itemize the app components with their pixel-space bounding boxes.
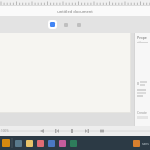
staticText: untitled document: [57, 9, 93, 14]
button[interactable]: Terminal: [70, 140, 77, 147]
button[interactable]: Select tool: [48, 20, 57, 29]
button[interactable]: Step back: [54, 128, 60, 134]
other: Select tool: [50, 22, 55, 27]
button[interactable]: Play: [84, 128, 90, 134]
other: Text tool: [64, 23, 68, 27]
staticText: Properties: [137, 35, 148, 42]
button[interactable]: Browser: [37, 140, 44, 147]
staticText: Create: [137, 111, 147, 115]
button[interactable]: Running app: [133, 140, 140, 147]
button[interactable]: Shape tool: [74, 20, 83, 29]
button[interactable]: 100%: [1, 129, 9, 133]
staticText: sans: [142, 142, 149, 146]
button[interactable]: [137, 81, 148, 86]
button[interactable]: Graphics: [59, 140, 66, 147]
staticText: 100%: [1, 129, 9, 133]
button[interactable]: Text tool: [61, 20, 70, 29]
button[interactable]: sans: [142, 142, 149, 146]
button[interactable]: Files: [15, 140, 22, 147]
button[interactable]: Stop: [69, 128, 75, 134]
button[interactable]: App launcher: [2, 139, 10, 147]
button[interactable]: Next: [99, 128, 105, 134]
other: Shape tool: [77, 23, 81, 27]
button[interactable]: [137, 89, 146, 97]
button[interactable]: Properties: [137, 35, 148, 42]
button[interactable]: Mail: [48, 140, 55, 147]
button[interactable]: Previous: [39, 128, 45, 134]
button[interactable]: Editor: [26, 140, 33, 147]
